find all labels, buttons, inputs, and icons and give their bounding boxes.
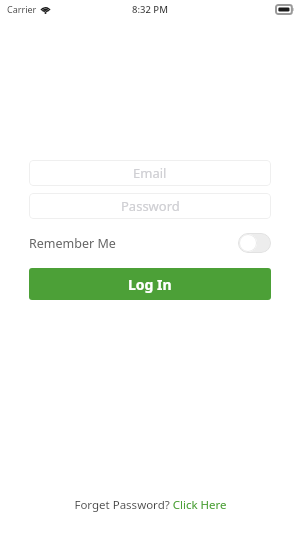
button[interactable]: Email <box>29 160 271 186</box>
staticText: Log In <box>128 275 172 294</box>
staticText: Remember Me <box>29 235 116 252</box>
button[interactable]: Password <box>29 193 271 219</box>
button[interactable]: Log In <box>29 268 271 300</box>
staticText: Carrier <box>7 3 37 15</box>
button[interactable]: Remember Me <box>29 232 271 254</box>
staticText: Forget Password? Click Here <box>74 497 227 513</box>
button[interactable]: Remember Me toggle <box>238 233 271 253</box>
staticText: Password <box>121 197 180 215</box>
staticText: 8:32 PM <box>132 3 168 16</box>
button[interactable]: Forget Password? Click Here <box>74 497 227 513</box>
staticText: Email <box>133 164 167 182</box>
